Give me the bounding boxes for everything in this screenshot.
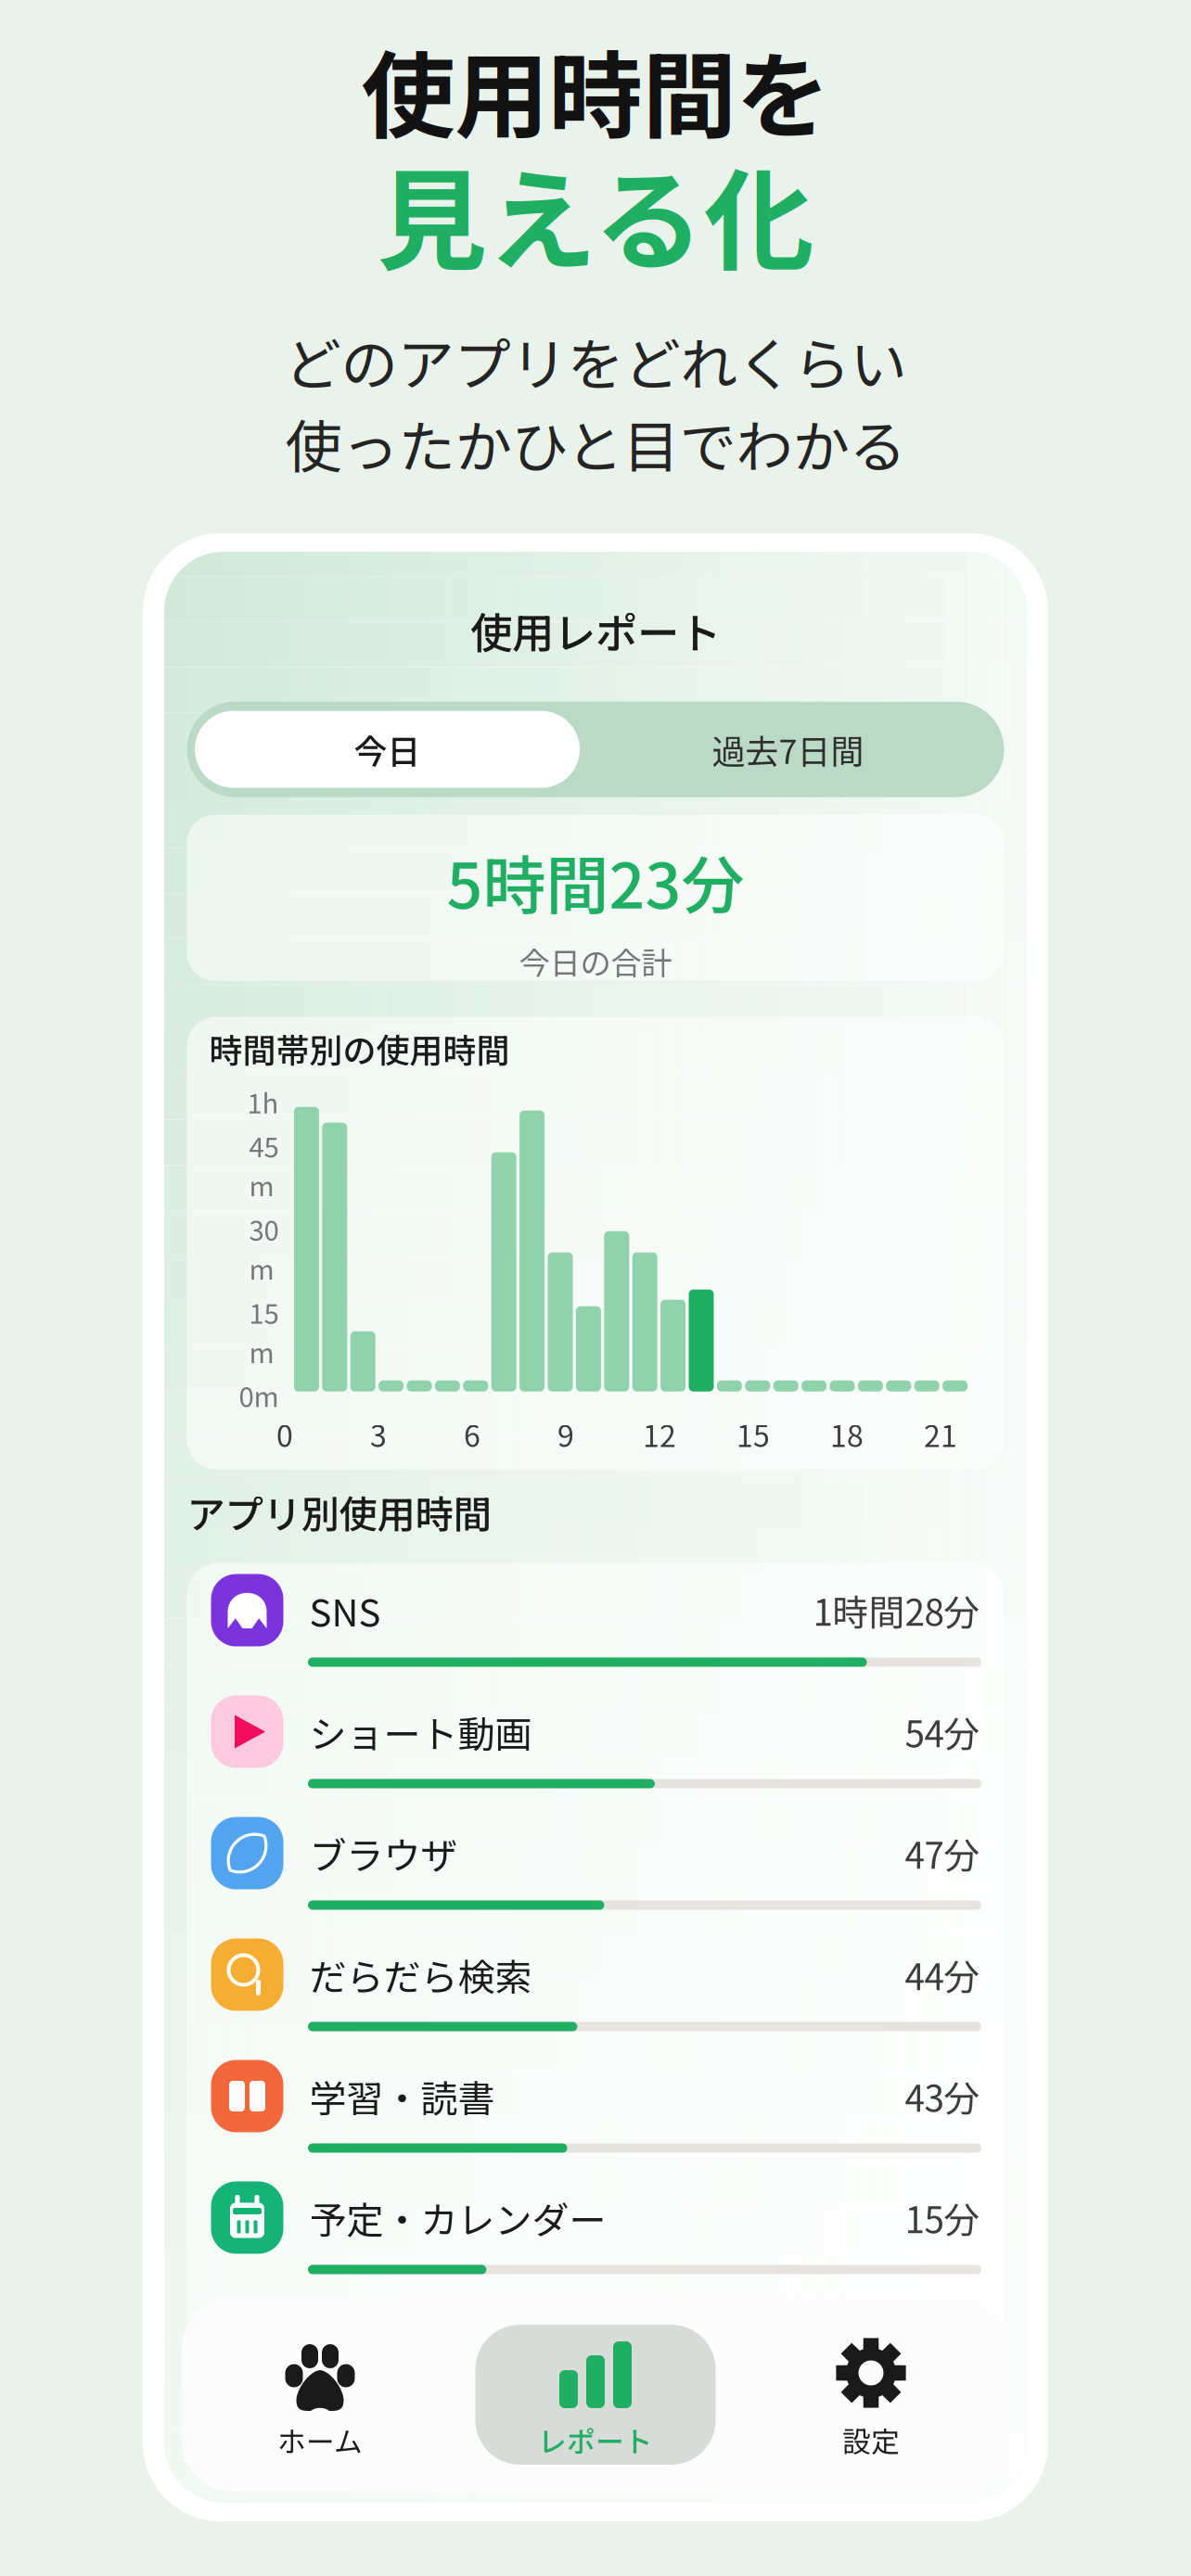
- button[interactable]: レポート: [475, 2325, 716, 2465]
- staticText: 1時間28分: [813, 1584, 980, 1636]
- button[interactable]: 予定・カレンダー: [187, 2181, 1004, 2303]
- button[interactable]: だらだら検索: [187, 1938, 1004, 2060]
- staticText: ショート動画: [309, 1705, 532, 1759]
- staticText: 45m: [249, 1126, 279, 1204]
- staticText: 47分: [905, 1827, 980, 1879]
- staticText: 過去7日間: [712, 725, 864, 774]
- staticText: 18: [830, 1413, 864, 1456]
- button[interactable]: 設定: [751, 2325, 991, 2465]
- staticText: 今日: [354, 725, 421, 774]
- button[interactable]: 今日: [195, 711, 580, 788]
- staticText: 5時間23分: [447, 835, 744, 927]
- staticText: SNS: [309, 1583, 381, 1637]
- staticText: アプリ別使用時間: [187, 1484, 491, 1540]
- staticText: 30m: [249, 1209, 279, 1288]
- staticText: 時間帯別の使用時間: [209, 1024, 510, 1073]
- staticText: 0m: [239, 1375, 279, 1415]
- staticText: 使用レポート: [470, 600, 721, 661]
- staticText: 15: [736, 1413, 770, 1456]
- staticText: ホーム: [277, 2419, 363, 2460]
- button[interactable]: 過去7日間: [580, 711, 996, 788]
- staticText: 21: [924, 1413, 957, 1456]
- staticText: 43分: [905, 2070, 980, 2122]
- staticText: 設定: [842, 2419, 900, 2460]
- staticText: 3: [370, 1413, 387, 1456]
- staticText: 15分: [905, 2192, 980, 2244]
- staticText: 44分: [905, 1949, 980, 2001]
- staticText: レポート: [538, 2419, 653, 2460]
- staticText: 予定・カレンダー: [309, 2191, 606, 2244]
- staticText: 0: [276, 1413, 293, 1456]
- staticText: 見える化: [377, 133, 814, 293]
- button[interactable]: ショート動画: [187, 1696, 1004, 1817]
- staticText: 6: [464, 1413, 480, 1456]
- staticText: 学習・読書: [309, 2069, 495, 2123]
- staticText: 9: [557, 1413, 574, 1456]
- staticText: どのアプリをどれくらい: [284, 320, 907, 402]
- staticText: 1h: [247, 1082, 279, 1121]
- staticText: 12: [643, 1413, 676, 1456]
- staticText: 使用時間を: [361, 21, 830, 157]
- staticText: 今日の合計: [519, 939, 672, 983]
- staticText: 54分: [905, 1706, 980, 1758]
- staticText: 使ったかひと目でわかる: [285, 402, 906, 484]
- staticText: ブラウザ: [309, 1826, 458, 1880]
- button[interactable]: ホーム: [200, 2325, 440, 2465]
- button[interactable]: SNS: [187, 1574, 1004, 1696]
- button[interactable]: ブラウザ: [187, 1817, 1004, 1938]
- staticText: だらだら検索: [309, 1948, 532, 2001]
- staticText: 15m: [249, 1292, 279, 1371]
- button[interactable]: 学習・読書: [187, 2060, 1004, 2181]
